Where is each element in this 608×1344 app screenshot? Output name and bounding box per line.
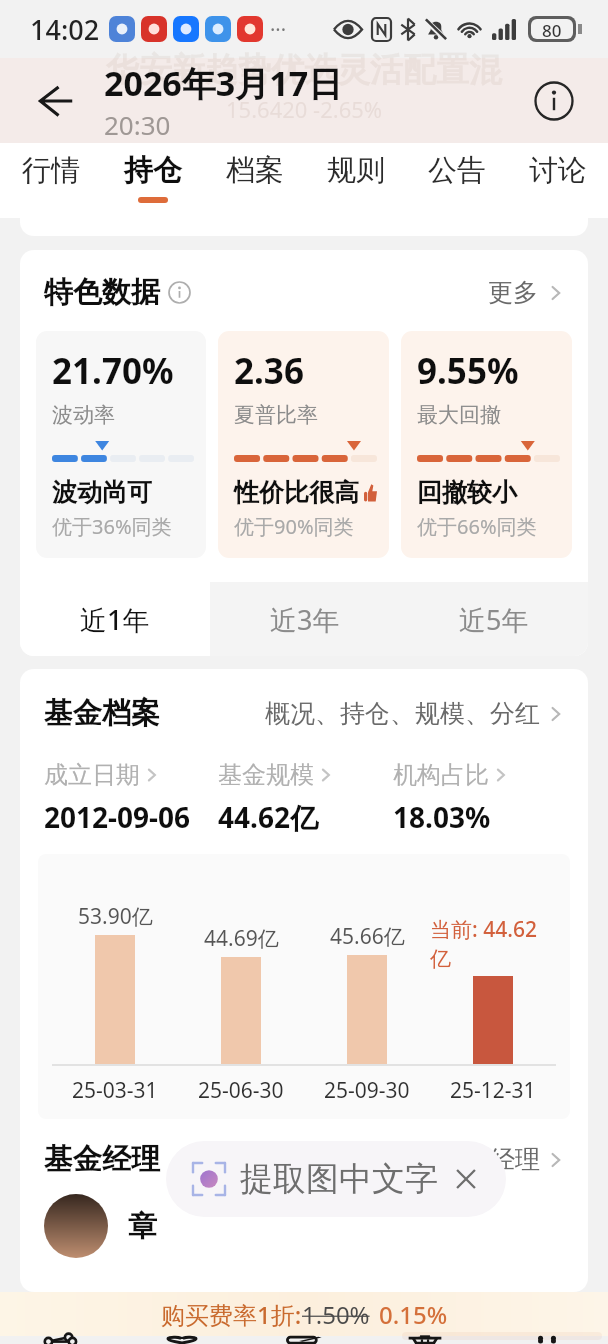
staticText: 80 (542, 19, 562, 39)
staticText: 14:02 (30, 11, 100, 48)
button[interactable]: 规则 (305, 143, 406, 218)
button[interactable]: 更多 (486, 1336, 608, 1344)
staticText: 2026年3月17日 (104, 60, 343, 106)
staticText: 现任基金经理 (390, 1144, 540, 1175)
staticText: 持仓 (124, 152, 182, 189)
button[interactable]: Back (18, 65, 90, 137)
staticText: 0.15% (379, 1298, 448, 1331)
staticText: 53.90亿 (78, 902, 153, 931)
staticText: 25-12-31 (450, 1076, 536, 1105)
button[interactable]: 编辑 (242, 1336, 364, 1344)
button[interactable]: 章 (44, 1194, 588, 1258)
button[interactable]: 提取图中文字 (166, 1141, 506, 1217)
button[interactable]: Fund information (522, 69, 586, 133)
staticText: 近5年 (459, 601, 529, 638)
staticText: 45.66亿 (330, 922, 405, 951)
staticText: 提取图中文字 (240, 1158, 438, 1200)
button[interactable]: 行情 (0, 143, 102, 218)
button[interactable]: 购买费率1折: (0, 1292, 608, 1336)
button[interactable]: 基金规模 (218, 760, 393, 836)
staticText: 波动尚可 (52, 477, 152, 508)
staticText: 回撤较小 (417, 477, 517, 508)
button[interactable]: 档案 (204, 143, 305, 218)
staticText: 25-09-30 (324, 1076, 410, 1105)
staticText: 讨论 (529, 152, 587, 189)
staticText: 夏普比率 (234, 402, 318, 428)
button[interactable]: 分享 (0, 1336, 121, 1344)
staticText: 规则 (327, 152, 385, 189)
button[interactable]: Close (452, 1165, 480, 1193)
button[interactable]: 持仓 (102, 143, 204, 218)
button[interactable]: 2.36 (218, 331, 389, 558)
staticText: 章 (128, 1208, 157, 1245)
staticText: 18.03% (393, 798, 491, 836)
staticText: 行情 (22, 152, 80, 189)
button[interactable]: 特色数据 (44, 274, 191, 311)
staticText: 2012-09-06 (44, 798, 191, 836)
staticText: 2.36 (234, 347, 304, 395)
button[interactable]: 基金经理 (44, 1141, 566, 1178)
staticText: 华安新趋势优选灵活配置混 (106, 49, 502, 91)
button[interactable]: 成立日期 (44, 760, 218, 836)
button[interactable]: 删除 (364, 1336, 486, 1344)
staticText: 购买费率1折: (161, 1298, 302, 1331)
button[interactable]: 公告 (406, 143, 507, 218)
staticText: 性价比很高 (234, 477, 359, 508)
staticText: ··· (270, 16, 287, 43)
staticText: 44.62亿 (218, 798, 318, 836)
staticText: 20:30 (104, 107, 171, 142)
staticText: 1.50% (302, 1298, 370, 1331)
staticText: 优于66%同类 (417, 513, 537, 540)
button[interactable]: 近5年 (399, 582, 588, 656)
staticText: 9.55% (417, 347, 519, 395)
staticText: 15.6420 -2.65% (226, 94, 383, 124)
staticText: 机构占比 (393, 760, 489, 790)
button[interactable]: 近3年 (210, 582, 399, 656)
staticText: 基金档案 (44, 695, 160, 732)
button[interactable]: 21.70% (36, 331, 206, 558)
staticText: 特色数据 (44, 274, 160, 311)
staticText: 波动率 (52, 402, 115, 428)
staticText: 44.69亿 (204, 924, 279, 953)
button[interactable]: 更多 (488, 277, 566, 308)
staticText: 成立日期 (44, 760, 140, 790)
button[interactable]: 机构占比 (393, 760, 568, 836)
staticText: 概况、持仓、规模、分红 (265, 698, 540, 729)
staticText: 基金规模 (218, 760, 314, 790)
staticText: 优于90%同类 (234, 513, 354, 540)
button[interactable]: 9.55% (401, 331, 572, 558)
button[interactable]: 收藏 (121, 1336, 242, 1344)
staticText: 25-06-30 (198, 1076, 284, 1105)
staticText: 近1年 (80, 601, 150, 638)
staticText: 21.70% (52, 347, 174, 395)
staticText: 档案 (226, 152, 284, 189)
staticText: 优于36%同类 (52, 513, 172, 540)
button[interactable]: 基金档案 (44, 695, 566, 732)
staticText: 近3年 (270, 601, 340, 638)
staticText: 当前: 44.62亿 (430, 915, 556, 972)
staticText: 基金经理 (44, 1141, 160, 1178)
staticText: 最大回撤 (417, 402, 501, 428)
staticText: 公告 (428, 152, 486, 189)
button[interactable]: 近1年 (20, 582, 210, 656)
staticText: 25-03-31 (72, 1076, 158, 1105)
staticText: 更多 (488, 277, 538, 308)
button[interactable]: 讨论 (507, 143, 608, 218)
